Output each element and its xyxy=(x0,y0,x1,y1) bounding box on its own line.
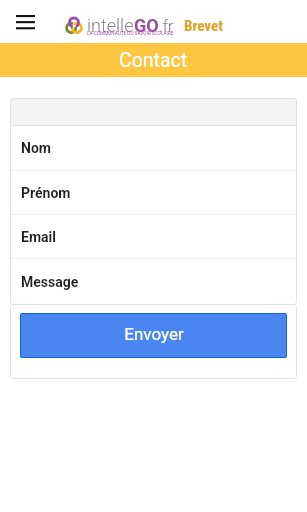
staticText: GO xyxy=(134,15,159,36)
button[interactable]: Prénom xyxy=(10,171,297,214)
staticText: Brevet xyxy=(184,17,223,35)
staticText: Envoyer xyxy=(124,324,184,344)
button[interactable]: Email xyxy=(10,215,297,258)
staticText: Message xyxy=(21,274,79,290)
staticText: LA COMMUNAUTE DU SAVOIR SCOLAIRE xyxy=(87,31,174,37)
staticText: intelle xyxy=(87,15,134,36)
staticText: Nom xyxy=(21,140,51,156)
staticText: Prénom xyxy=(21,185,71,201)
button[interactable]: Menu xyxy=(10,7,40,37)
staticText: Email xyxy=(21,229,56,245)
button[interactable]: Message xyxy=(10,259,297,305)
button[interactable]: Nom xyxy=(10,126,297,170)
staticText: Contact xyxy=(119,49,188,72)
button[interactable]: Envoyer xyxy=(20,313,287,358)
staticText: .fr xyxy=(159,17,174,36)
